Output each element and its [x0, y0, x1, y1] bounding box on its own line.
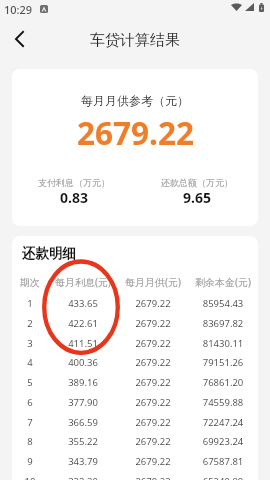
- staticText: 81430.11: [188, 337, 258, 350]
- staticText: 355.22: [48, 435, 118, 448]
- staticText: 8: [12, 435, 48, 448]
- staticText: 2679.22: [118, 337, 188, 350]
- staticText: 79151.26: [188, 356, 258, 369]
- staticText: 377.90: [48, 396, 118, 409]
- staticText: 7: [12, 416, 48, 429]
- staticText: 2679.22: [118, 435, 188, 448]
- staticText: 期次: [12, 276, 48, 289]
- staticText: 10: [12, 475, 48, 480]
- staticText: 366.59: [48, 416, 118, 429]
- staticText: 剩余本金(元): [188, 275, 258, 289]
- staticText: 74559.88: [188, 396, 258, 409]
- staticText: 1: [12, 297, 48, 310]
- staticText: 2679.22: [118, 416, 188, 429]
- staticText: 支付利息（万元）: [38, 177, 110, 188]
- staticText: 2679.22: [118, 376, 188, 389]
- staticText: 6: [12, 396, 48, 409]
- staticText: 9.65: [183, 188, 211, 207]
- staticText: 2: [12, 317, 48, 330]
- staticText: 每月月供参考（元）: [81, 93, 189, 108]
- staticText: 车贷计算结果: [90, 31, 180, 50]
- staticText: 83697.82: [188, 317, 258, 330]
- staticText: 332.30: [48, 475, 118, 480]
- staticText: 10:29: [4, 2, 33, 17]
- staticText: 422.61: [48, 317, 118, 330]
- staticText: 2679.22: [118, 317, 188, 330]
- staticText: 389.16: [48, 376, 118, 389]
- staticText: 每月利息(元): [48, 275, 118, 289]
- staticText: 4: [12, 356, 48, 369]
- staticText: 343.79: [48, 455, 118, 468]
- staticText: 3: [12, 337, 48, 350]
- staticText: 2679.22: [118, 475, 188, 480]
- staticText: 2679.22: [118, 396, 188, 409]
- staticText: 每月月供(元): [118, 275, 188, 289]
- staticText: 76861.20: [188, 376, 258, 389]
- staticText: 还款明细: [22, 245, 76, 262]
- staticText: 65240.89: [188, 475, 258, 480]
- staticText: 5: [12, 376, 48, 389]
- staticText: 还款总额（万元）: [161, 177, 233, 188]
- staticText: 0.83: [60, 188, 88, 207]
- staticText: 67587.81: [188, 455, 258, 468]
- staticText: 72247.24: [188, 416, 258, 429]
- staticText: 433.65: [48, 297, 118, 310]
- staticText: 2679.22: [118, 356, 188, 369]
- staticText: 2679.22: [118, 455, 188, 468]
- staticText: 2679.22: [118, 297, 188, 310]
- staticText: 69923.24: [188, 435, 258, 448]
- staticText: 411.51: [48, 337, 118, 350]
- button[interactable]: Back: [0, 25, 38, 59]
- staticText: 2679.22: [77, 111, 194, 154]
- staticText: 9: [12, 455, 48, 468]
- staticText: 400.36: [48, 356, 118, 369]
- staticText: 85954.43: [188, 297, 258, 310]
